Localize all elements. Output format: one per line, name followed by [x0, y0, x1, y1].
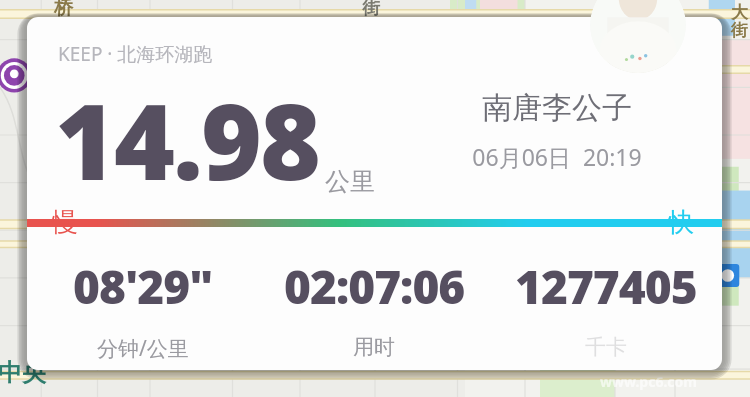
staticText: 14.98: [55, 69, 319, 211]
staticText: 大 街: [731, 2, 748, 41]
staticText: 02:07:06: [284, 255, 465, 318]
staticText: 公里: [325, 166, 375, 197]
staticText: 南唐李公子: [482, 89, 632, 127]
staticText: 慢: [52, 206, 78, 239]
button[interactable]: User avatar: [590, 0, 686, 73]
staticText: 分钟/公里: [97, 334, 189, 363]
staticText: 快: [668, 206, 694, 239]
staticText: KEEP · 北海环湖跑: [58, 41, 213, 67]
staticText: 街: [362, 0, 380, 20]
staticText: 用时: [353, 334, 395, 360]
button[interactable]: 08'29": [27, 255, 258, 363]
staticText: 中央: [0, 358, 46, 388]
staticText: 桥: [54, 0, 73, 20]
button[interactable]: KEEP · 北海环湖跑: [27, 17, 722, 370]
staticText: 1277405: [515, 255, 697, 318]
staticText: www.pc6.com: [600, 372, 697, 391]
staticText: 千卡: [585, 334, 627, 360]
button[interactable]: 1277405: [490, 255, 722, 360]
staticText: 06月06日 20:19: [472, 141, 642, 172]
button[interactable]: 02:07:06: [258, 255, 490, 360]
staticText: 08'29": [73, 255, 213, 318]
